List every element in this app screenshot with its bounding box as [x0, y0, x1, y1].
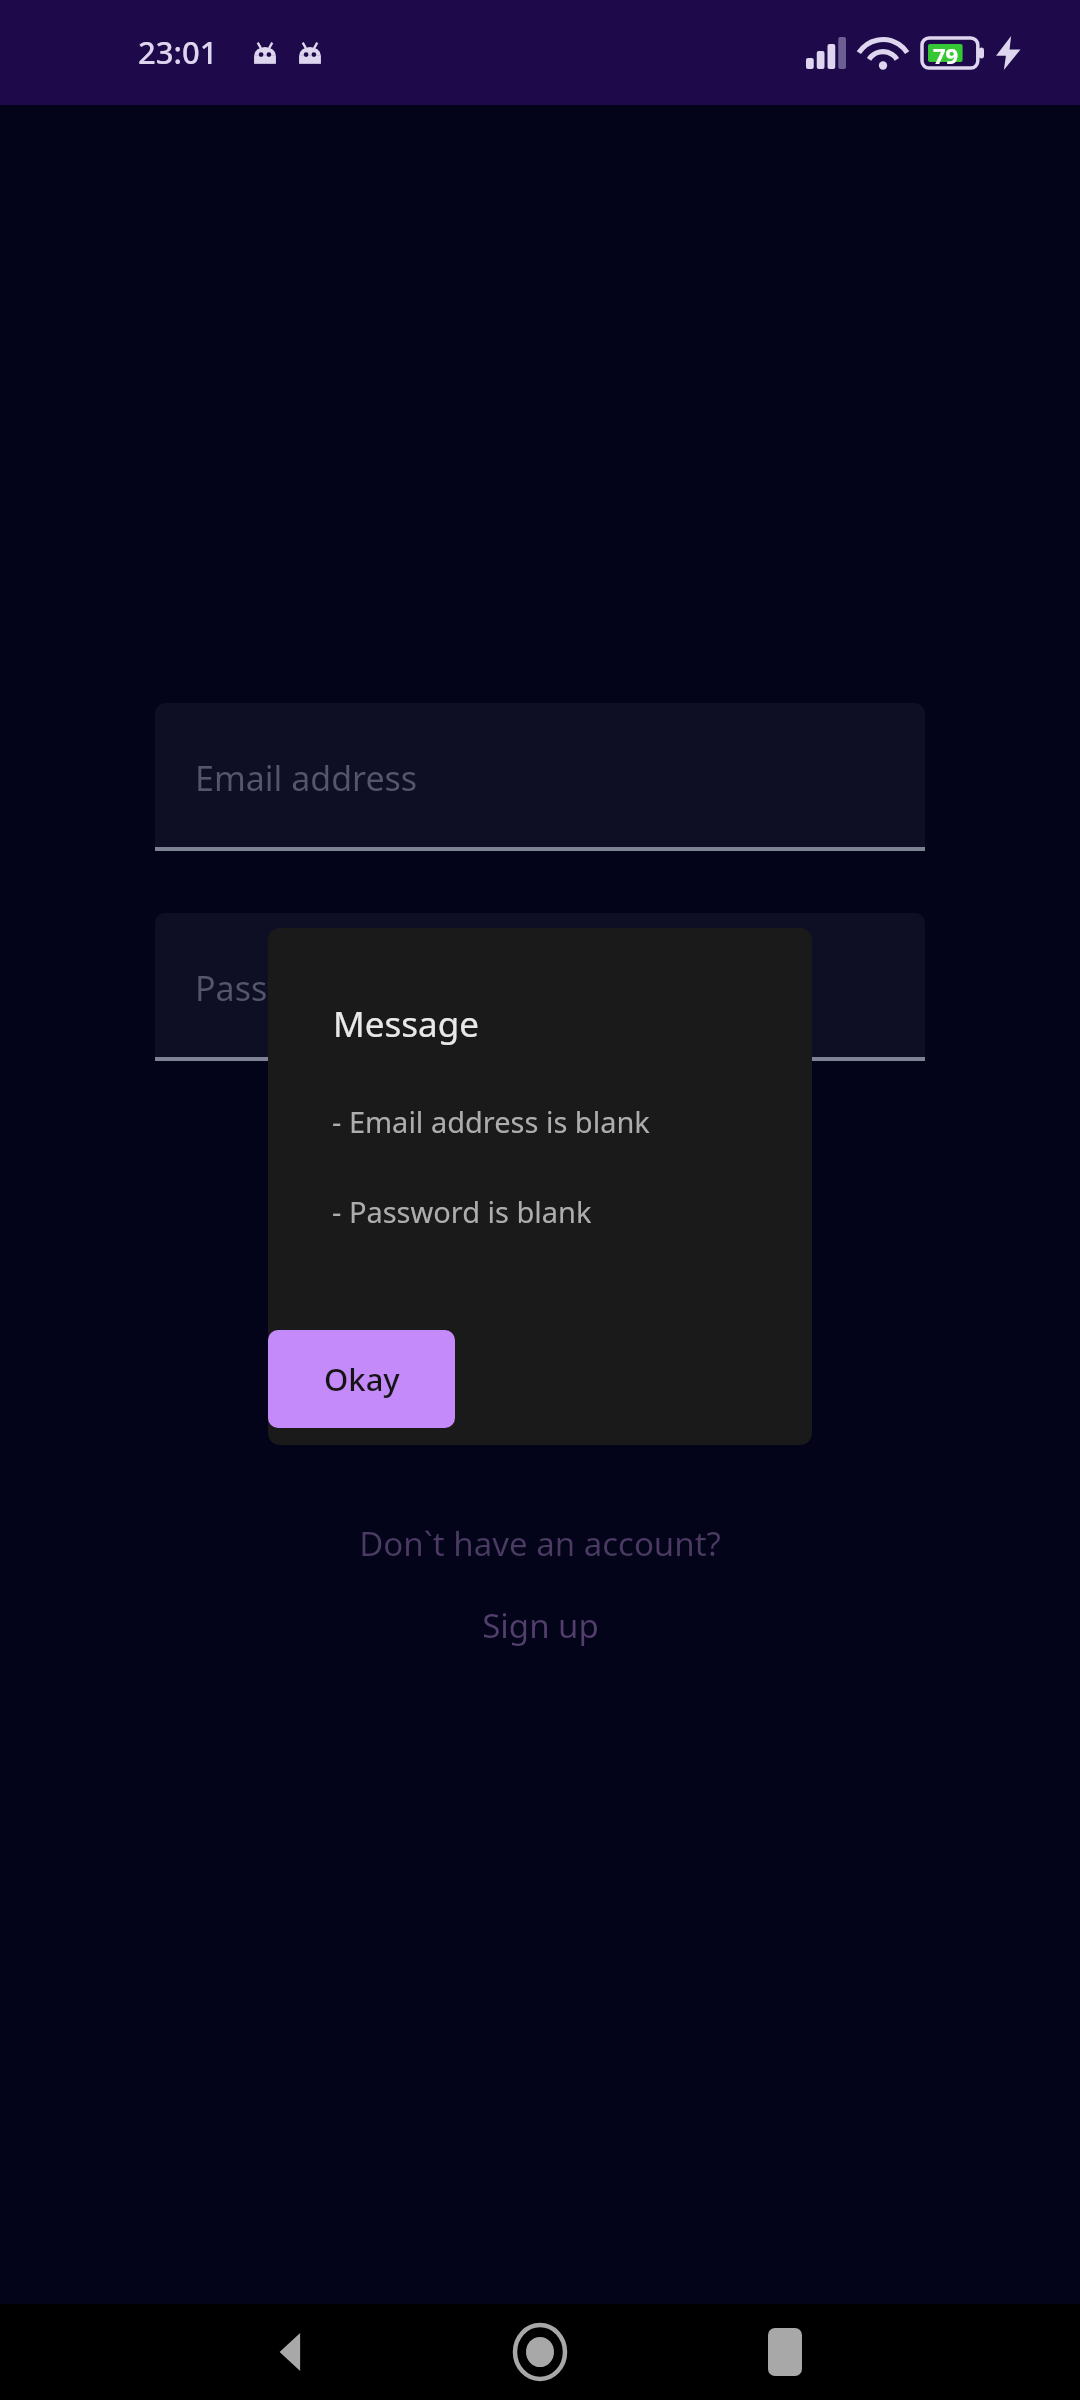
staticText: Sign up	[482, 1603, 599, 1648]
staticText: 79	[933, 40, 959, 70]
button[interactable]: Don`t have an account?	[0, 1507, 1080, 1579]
staticText: - Password is blank	[332, 1192, 592, 1231]
button[interactable]: Password	[155, 913, 925, 1061]
staticText: Don`t have an account?	[359, 1521, 721, 1566]
staticText: Password	[195, 965, 349, 1011]
button[interactable]: Email address	[155, 703, 925, 851]
button[interactable]: Okay	[268, 1330, 455, 1428]
staticText: - Email address is blank	[332, 1102, 650, 1141]
button[interactable]: Sign up	[0, 1589, 1080, 1661]
button[interactable]: Recent apps	[710, 2304, 860, 2400]
staticText: Okay	[324, 1358, 400, 1400]
staticText: 23:01	[138, 31, 218, 73]
staticText: Message	[333, 1000, 479, 1048]
button[interactable]: Back	[216, 2304, 366, 2400]
staticText: Email address	[195, 755, 418, 801]
button[interactable]: Home	[465, 2304, 615, 2400]
